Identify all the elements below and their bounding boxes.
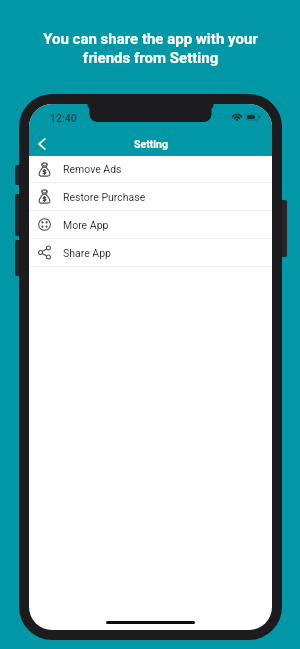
staticText: 12:40 [50,112,77,124]
button[interactable]: Back [31,133,53,155]
button[interactable]: Remove Ads [29,156,272,183]
button[interactable]: More App [29,211,272,239]
staticText: Remove Ads [63,163,122,175]
button[interactable]: Restore Purchase [29,183,272,211]
staticText: More App [63,219,109,231]
staticText: Restore Purchase [63,191,146,203]
button[interactable]: Share App [29,239,272,267]
staticText: Share App [63,247,112,259]
staticText: Setting [134,138,168,150]
staticText: You can share the app with your friends … [43,30,258,67]
